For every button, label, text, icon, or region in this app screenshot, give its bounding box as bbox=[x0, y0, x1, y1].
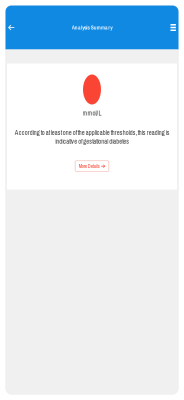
staticText: mmol/L bbox=[82, 108, 101, 117]
staticText: According to at least one of the applica… bbox=[14, 128, 169, 146]
button[interactable]: Back bbox=[5, 10, 17, 44]
button[interactable]: Menu bbox=[168, 10, 178, 44]
staticText: More Details bbox=[79, 163, 100, 169]
staticText: Analysis Summary bbox=[72, 24, 112, 31]
button[interactable]: More Details bbox=[75, 161, 109, 172]
